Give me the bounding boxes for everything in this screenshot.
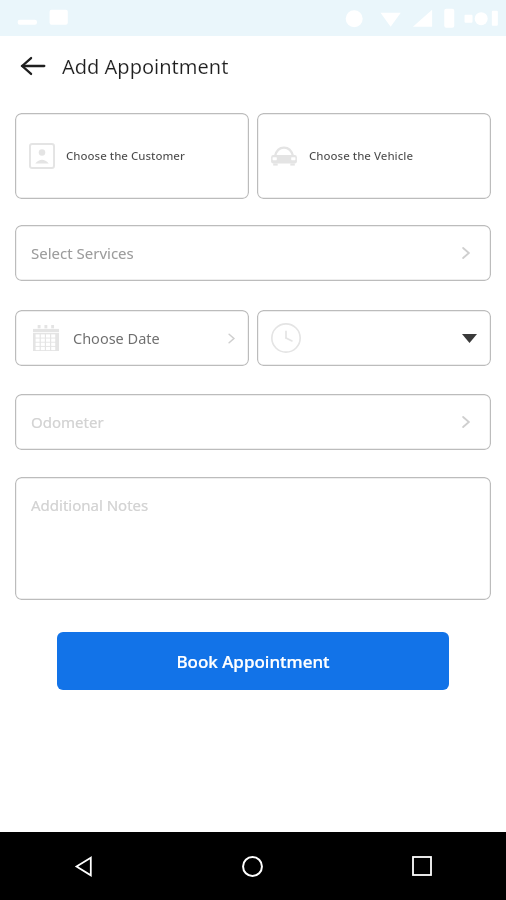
- staticText: Choose Date: [73, 328, 160, 348]
- button[interactable]: Recent apps: [337, 832, 506, 900]
- button[interactable]: Home: [168, 832, 337, 900]
- staticText: Choose the Customer: [66, 148, 185, 164]
- button[interactable]: Book Appointment: [57, 632, 449, 690]
- staticText: Additional Notes: [31, 495, 149, 515]
- staticText: Choose the Vehicle: [309, 148, 414, 164]
- button[interactable]: Back: [0, 832, 168, 900]
- button[interactable]: Back: [11, 44, 55, 88]
- staticText: Book Appointment: [176, 650, 330, 673]
- button[interactable]: Select Services: [15, 225, 491, 281]
- button[interactable]: Choose Time: [257, 310, 491, 366]
- staticText: Odometer: [31, 412, 104, 432]
- button[interactable]: Choose the Vehicle: [257, 113, 491, 199]
- button[interactable]: Odometer: [15, 394, 491, 450]
- staticText: Add Appointment: [62, 53, 229, 80]
- button[interactable]: Choose Date: [15, 310, 249, 366]
- staticText: Select Services: [31, 243, 134, 263]
- button[interactable]: Choose the Customer: [15, 113, 249, 199]
- button[interactable]: Additional Notes: [15, 477, 491, 600]
